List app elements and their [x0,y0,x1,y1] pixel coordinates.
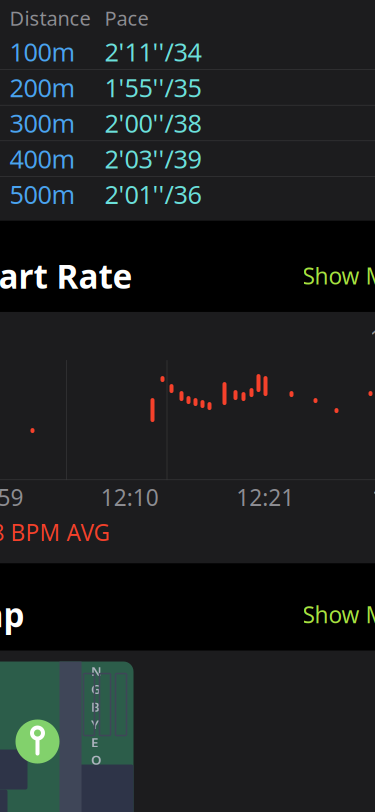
staticText: 12:21 [236,482,294,512]
staticText: 2'00''/38 [104,106,201,140]
staticText: 12:10 [101,482,159,512]
staticText: 1'55''/35 [104,71,201,104]
staticText: Show More [302,599,375,629]
staticText: 300m [9,106,75,140]
staticText: Heart Rate [0,254,132,298]
staticText: Distance [9,5,90,31]
button[interactable]: Show More [278,256,375,296]
staticText: 100 [371,482,375,512]
staticText: 200m [9,71,75,104]
staticText: Show More [302,261,375,291]
button[interactable]: Show More [278,594,375,634]
staticText: 138 BPM AVG [0,517,110,547]
staticText: 100m [9,35,75,69]
staticText: 2'01''/36 [104,177,201,211]
staticText: 11:59 [0,482,23,512]
staticText: Pace [104,5,148,31]
staticText: 400m [9,142,75,175]
staticText: 500m [9,177,75,211]
staticText: N G B Y E O [91,662,102,768]
staticText: 2'11''/34 [104,35,201,69]
staticText: 152 [369,323,375,353]
staticText: 2'03''/39 [104,142,201,175]
staticText: Map [0,592,24,637]
